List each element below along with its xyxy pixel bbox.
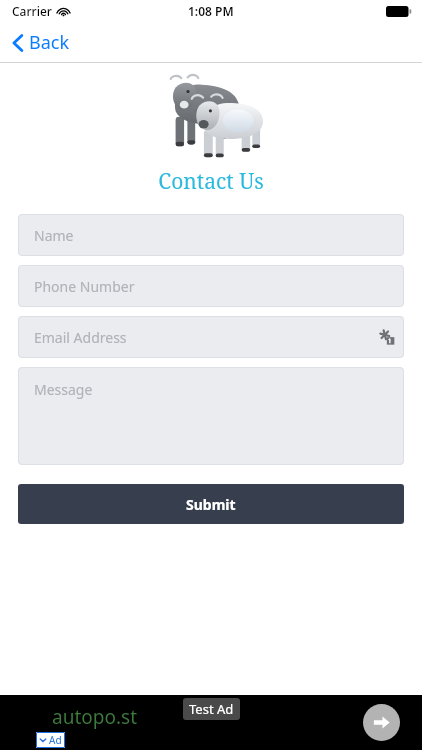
- button[interactable]: autopo.st: [0, 695, 422, 750]
- staticText: Test Ad: [189, 700, 234, 718]
- button[interactable]: Phone Number: [18, 265, 404, 307]
- button[interactable]: Back: [8, 26, 74, 59]
- staticText: 1:08 PM: [188, 3, 234, 19]
- staticText: Submit: [186, 495, 236, 514]
- staticText: Message: [34, 380, 93, 399]
- staticText: Ad: [49, 733, 62, 747]
- button[interactable]: Name: [18, 214, 404, 256]
- staticText: Phone Number: [34, 277, 135, 296]
- staticText: Contact Us: [0, 167, 422, 196]
- button[interactable]: Open advertisement: [363, 704, 400, 741]
- button[interactable]: Submit: [18, 484, 404, 524]
- staticText: Carrier: [12, 3, 52, 19]
- staticText: Name: [34, 226, 74, 245]
- staticText: Back: [29, 30, 70, 55]
- staticText: autopo.st: [52, 704, 137, 730]
- staticText: Email Address: [34, 328, 127, 347]
- button[interactable]: Message: [18, 367, 404, 465]
- button[interactable]: Email Address: [18, 316, 404, 358]
